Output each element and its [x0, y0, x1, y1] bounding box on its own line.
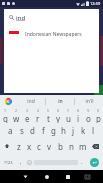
staticText: 6	[57, 108, 60, 113]
staticText: u	[66, 113, 71, 123]
staticText: m	[79, 141, 87, 152]
staticText: Indonesian Newspapers	[25, 31, 82, 38]
button[interactable]: s	[16, 123, 27, 138]
button[interactable]: ?123	[0, 154, 17, 170]
staticText: 8	[77, 108, 80, 113]
staticText: in	[58, 98, 63, 105]
button[interactable]: 9	[83, 108, 93, 123]
button[interactable]: 0	[93, 108, 103, 123]
staticText: 5	[47, 108, 50, 113]
staticText: 1	[4, 108, 7, 113]
staticText: d	[30, 125, 35, 136]
button[interactable]: 8	[73, 108, 83, 123]
staticText: p	[96, 113, 101, 123]
staticText: g	[51, 125, 56, 136]
button[interactable]: 2	[11, 108, 22, 123]
button[interactable]: ind	[16, 95, 45, 108]
button[interactable]: c	[34, 138, 44, 154]
staticText: i	[77, 113, 80, 123]
staticText: f	[42, 125, 45, 136]
button[interactable]: j	[68, 123, 78, 138]
staticText: in'll	[85, 98, 94, 105]
button[interactable]: 7	[63, 108, 73, 123]
staticText: 4	[37, 108, 40, 113]
staticText: a	[8, 125, 13, 136]
button[interactable]: ,	[17, 154, 25, 170]
button[interactable]: Back	[15, 170, 36, 183]
staticText: v	[47, 141, 52, 152]
button[interactable]: Emoji	[25, 154, 34, 170]
button[interactable]: f	[38, 123, 48, 138]
staticText: ,	[20, 158, 22, 166]
button[interactable]: 3	[22, 108, 33, 123]
staticText: 3	[26, 108, 29, 113]
staticText: 0	[97, 108, 100, 113]
button[interactable]: Space	[34, 157, 78, 167]
staticText: r	[36, 113, 40, 123]
button[interactable]: z	[14, 138, 24, 154]
button[interactable]: Shift	[0, 138, 14, 154]
staticText: x	[27, 141, 32, 152]
staticText: e	[25, 113, 30, 123]
button[interactable]: v	[44, 138, 55, 154]
staticText: 9	[87, 108, 90, 113]
staticText: t	[47, 113, 50, 123]
staticText: o	[86, 113, 91, 123]
staticText: ind	[16, 14, 26, 22]
staticText: j	[72, 125, 75, 136]
staticText: ind	[27, 98, 35, 105]
button[interactable]: 4	[33, 108, 43, 123]
button[interactable]: Google	[0, 95, 16, 108]
button[interactable]: Backspace	[88, 138, 103, 154]
button[interactable]: g	[48, 123, 58, 138]
staticText: s	[20, 125, 24, 136]
button[interactable]: d	[27, 123, 38, 138]
button[interactable]: Recents	[57, 170, 78, 183]
button[interactable]: h	[58, 123, 68, 138]
button[interactable]: l	[88, 123, 98, 138]
button[interactable]: ind	[4, 9, 99, 26]
button[interactable]: b	[55, 138, 66, 154]
button[interactable]: Home	[36, 170, 57, 183]
staticText: q	[3, 113, 8, 123]
button[interactable]: .	[78, 154, 86, 170]
button[interactable]: in'll	[75, 95, 103, 108]
button[interactable]: m	[77, 138, 88, 154]
button[interactable]: 1	[0, 108, 11, 123]
staticText: b	[58, 141, 63, 152]
staticText: c	[37, 141, 41, 152]
staticText: h	[61, 125, 66, 136]
staticText: k	[81, 125, 86, 136]
button[interactable]: 5	[43, 108, 53, 123]
button[interactable]: a	[5, 123, 16, 138]
staticText: 2	[15, 108, 18, 113]
staticText: n	[69, 141, 74, 152]
button[interactable]: Switch keyboard	[78, 170, 97, 183]
button[interactable]: k	[78, 123, 88, 138]
button[interactable]: Indonesian Newspapers	[4, 26, 99, 42]
staticText: 12:59	[90, 1, 101, 6]
button[interactable]: 6	[53, 108, 63, 123]
staticText: w	[13, 113, 20, 123]
button[interactable]: n	[66, 138, 77, 154]
staticText: .	[81, 158, 83, 166]
button[interactable]: Enter	[86, 154, 103, 170]
staticText: z	[17, 141, 21, 152]
button[interactable]: x	[24, 138, 34, 154]
staticText: 7	[67, 108, 70, 113]
button[interactable]: in	[46, 95, 74, 108]
staticText: ?123	[4, 160, 13, 165]
staticText: l	[92, 125, 95, 136]
staticText: y	[56, 113, 61, 123]
